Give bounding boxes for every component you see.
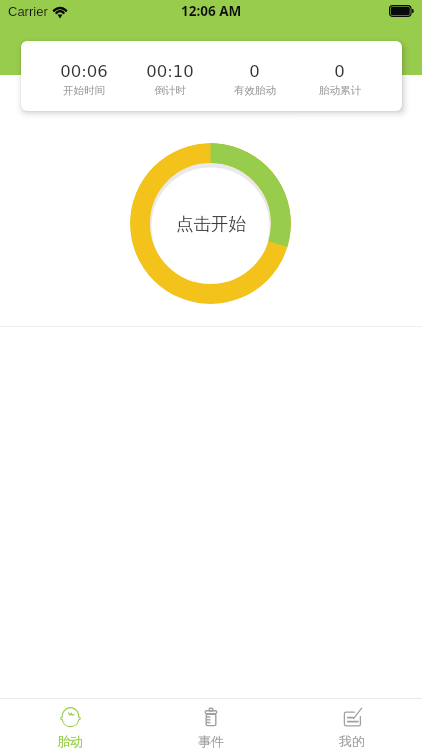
other: 事件 — [201, 707, 221, 727]
staticText: 00:06 — [60, 62, 108, 81]
button[interactable]: 胎动 — [0, 699, 140, 749]
button[interactable]: 事件 — [140, 699, 281, 749]
staticText: 12:06 AM — [181, 2, 242, 20]
staticText: 胎动 — [57, 733, 83, 749]
staticText: 倒计时 — [154, 84, 186, 97]
staticText: 我的 — [339, 733, 365, 749]
other: Battery — [389, 5, 414, 17]
staticText: Carrier — [8, 4, 48, 19]
staticText: 开始时间 — [63, 84, 105, 97]
button[interactable]: 我的 — [281, 699, 422, 749]
other: 胎动 — [60, 707, 81, 727]
staticText: 00:10 — [146, 62, 194, 81]
other: 我的 — [342, 707, 362, 727]
button[interactable]: 点击开始 — [130, 143, 291, 304]
staticText: 点击开始 — [176, 213, 246, 235]
staticText: 有效胎动 — [234, 84, 276, 97]
staticText: 0 — [334, 62, 345, 81]
staticText: 事件 — [198, 733, 224, 749]
staticText: 胎动累计 — [319, 84, 361, 97]
staticText: 0 — [249, 62, 260, 81]
